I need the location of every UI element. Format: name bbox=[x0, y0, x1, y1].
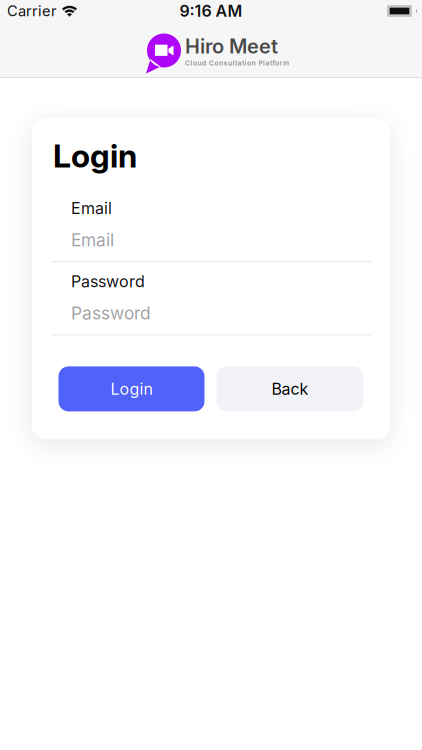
staticText: Email bbox=[71, 230, 114, 250]
staticText: 9:16 AM bbox=[179, 2, 242, 20]
staticText: Cloud Consultation Platform bbox=[185, 59, 289, 67]
staticText: Back bbox=[271, 379, 308, 398]
button[interactable]: Login bbox=[58, 366, 204, 411]
staticText: Hiro Meet bbox=[185, 34, 278, 58]
staticText: Email bbox=[71, 199, 112, 218]
staticText: Password bbox=[71, 303, 151, 323]
staticText: Password bbox=[71, 272, 145, 291]
staticText: Login bbox=[110, 379, 152, 398]
button[interactable]: Back bbox=[216, 366, 363, 411]
staticText: Carrier bbox=[7, 2, 57, 20]
staticText: Login bbox=[53, 137, 137, 175]
button[interactable]: Email text field bbox=[51, 230, 371, 262]
button[interactable]: Password text field bbox=[51, 303, 371, 335]
